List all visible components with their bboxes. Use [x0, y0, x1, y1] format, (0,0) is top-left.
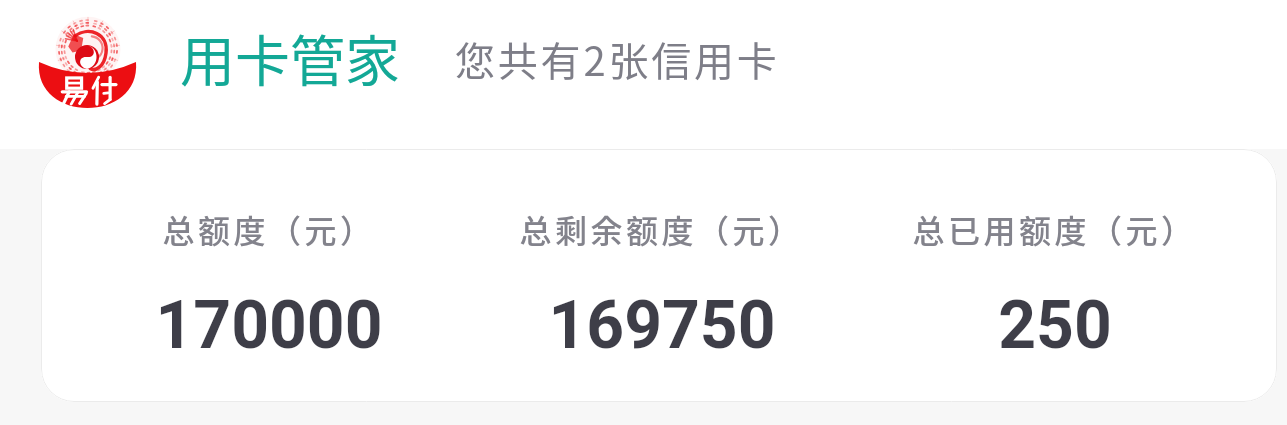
staticText: 总已用额度（元）	[912, 206, 1197, 252]
staticText: 用卡管家	[180, 17, 401, 97]
button[interactable]: 总已用额度（元）	[858, 149, 1251, 402]
button[interactable]: 总剩余额度（元）	[465, 149, 858, 402]
button[interactable]: 您共有2张信用卡	[455, 30, 780, 88]
staticText: 250	[998, 287, 1112, 364]
staticText: 您共有2张信用卡	[455, 30, 780, 88]
staticText: 总额度（元）	[162, 206, 376, 252]
button[interactable]: 用卡管家	[180, 17, 401, 97]
button[interactable]: 总额度（元）	[72, 149, 465, 402]
button[interactable]: 易付 logo	[39, 19, 136, 109]
staticText: 169750	[548, 287, 776, 364]
staticText: 170000	[155, 287, 383, 364]
staticText: 总剩余额度（元）	[519, 206, 804, 252]
